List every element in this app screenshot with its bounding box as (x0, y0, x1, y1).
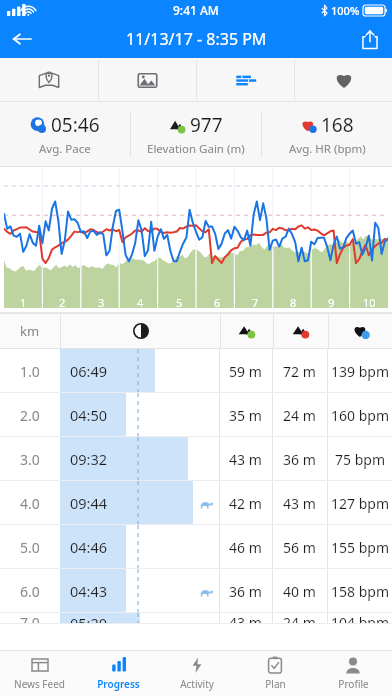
staticText: 59 m (229, 362, 262, 381)
button[interactable]: 6.0 (0, 569, 392, 613)
button[interactable]: 3.0 (0, 437, 392, 481)
button[interactable]: News Feed (0, 650, 79, 696)
staticText: 04:43 (70, 581, 108, 601)
staticText: 9:41 AM (173, 2, 219, 18)
staticText: 104 bpm (331, 613, 389, 624)
button[interactable]: 7.0 (0, 613, 392, 624)
staticText: 5.0 (20, 538, 40, 557)
staticText: 43 m (229, 450, 262, 469)
staticText: Avg. HR (bpm) (289, 141, 366, 157)
staticText: 35 m (229, 406, 262, 425)
staticText: 11/13/17 - 8:35 PM (126, 28, 267, 50)
staticText: 3 (98, 295, 105, 310)
staticText: Activity (180, 677, 214, 691)
staticText: 42 m (229, 494, 262, 513)
staticText: Elevation Gain (m) (147, 141, 245, 157)
button[interactable]: 168 (262, 102, 392, 167)
button[interactable]: Activity (158, 650, 236, 696)
staticText: 9 (328, 295, 335, 310)
staticText: 100% (331, 3, 360, 18)
staticText: 43 m (229, 613, 262, 624)
staticText: 43 m (283, 494, 316, 513)
staticText: 155 bpm (331, 538, 389, 557)
button[interactable]: 05:46 (0, 102, 130, 167)
staticText: 158 bpm (331, 582, 389, 601)
button[interactable]: Heart rate (295, 58, 392, 102)
staticText: 5 (176, 295, 183, 310)
button[interactable]: 5.0 (0, 525, 392, 569)
button[interactable]: 977 (131, 102, 261, 167)
staticText: Progress (97, 677, 140, 691)
staticText: Avg. Pace (39, 141, 91, 157)
staticText: 24 m (283, 406, 316, 425)
staticText: Profile (338, 677, 369, 691)
button[interactable]: Share (348, 20, 392, 58)
staticText: 09:32 (70, 449, 108, 469)
staticText: 160 bpm (331, 406, 389, 425)
staticText: 56 m (283, 538, 316, 557)
staticText: News Feed (14, 677, 65, 691)
staticText: km (20, 322, 40, 340)
staticText: 72 m (283, 362, 316, 381)
button[interactable]: Profile (314, 650, 392, 696)
button[interactable]: Plan (236, 650, 314, 696)
staticText: 7 (252, 295, 259, 310)
staticText: 04:50 (70, 405, 108, 425)
staticText: 46 m (229, 538, 262, 557)
staticText: 977 (190, 112, 223, 138)
staticText: 168 (321, 112, 354, 138)
staticText: 2.0 (20, 406, 40, 425)
staticText: 1 (20, 295, 27, 310)
staticText: 8 (290, 295, 297, 310)
button[interactable]: Back (0, 20, 44, 58)
staticText: Plan (265, 677, 286, 691)
staticText: 4 (137, 295, 144, 310)
staticText: 1.0 (20, 362, 40, 381)
staticText: 36 m (229, 582, 262, 601)
staticText: 7.0 (20, 613, 40, 624)
button[interactable]: Progress (79, 650, 158, 696)
staticText: 3.0 (20, 450, 40, 469)
staticText: 2 (59, 295, 66, 310)
staticText: 04:46 (70, 537, 108, 557)
button[interactable]: Photos (99, 58, 196, 102)
staticText: 139 bpm (331, 362, 389, 381)
staticText: 05:20 (70, 613, 108, 624)
button[interactable]: 4.0 (0, 481, 392, 525)
staticText: 10 (363, 295, 376, 310)
staticText: 6.0 (20, 582, 40, 601)
staticText: 24 m (283, 613, 316, 624)
button[interactable]: Map (0, 58, 98, 102)
staticText: 6 (214, 295, 221, 310)
staticText: 40 m (283, 582, 316, 601)
staticText: 05:46 (51, 112, 100, 138)
button[interactable]: 1.0 (0, 349, 392, 393)
staticText: 127 bpm (331, 494, 389, 513)
button[interactable]: Stats (197, 58, 294, 102)
staticText: 4.0 (20, 494, 40, 513)
staticText: 06:49 (70, 361, 108, 381)
button[interactable]: 2.0 (0, 393, 392, 437)
staticText: 36 m (283, 450, 316, 469)
staticText: 75 bpm (335, 450, 385, 469)
staticText: 09:44 (70, 493, 108, 513)
